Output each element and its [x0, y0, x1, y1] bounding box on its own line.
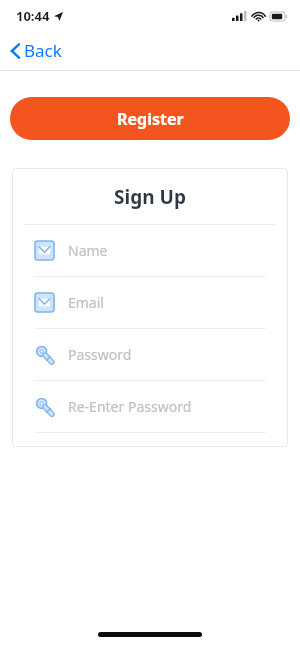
staticText: Email	[68, 293, 104, 312]
button[interactable]: Register	[10, 97, 290, 140]
button[interactable]: Password field	[12, 329, 288, 381]
other: Password field	[35, 345, 54, 364]
button[interactable]: Email field	[12, 225, 288, 277]
staticText: Back	[24, 39, 62, 62]
other: Email field	[35, 241, 54, 260]
staticText: 10:44	[16, 7, 50, 25]
button[interactable]: Back	[7, 35, 65, 66]
staticText: Sign Up	[12, 184, 288, 210]
button[interactable]: Email field	[12, 277, 288, 329]
staticText: Name	[68, 241, 108, 260]
other: Email field	[35, 293, 54, 312]
other: Password field	[35, 397, 54, 416]
button[interactable]: Password field	[12, 381, 288, 433]
staticText: Re-Enter Password	[68, 397, 192, 416]
staticText: Register	[117, 108, 184, 130]
staticText: Password	[68, 345, 132, 364]
